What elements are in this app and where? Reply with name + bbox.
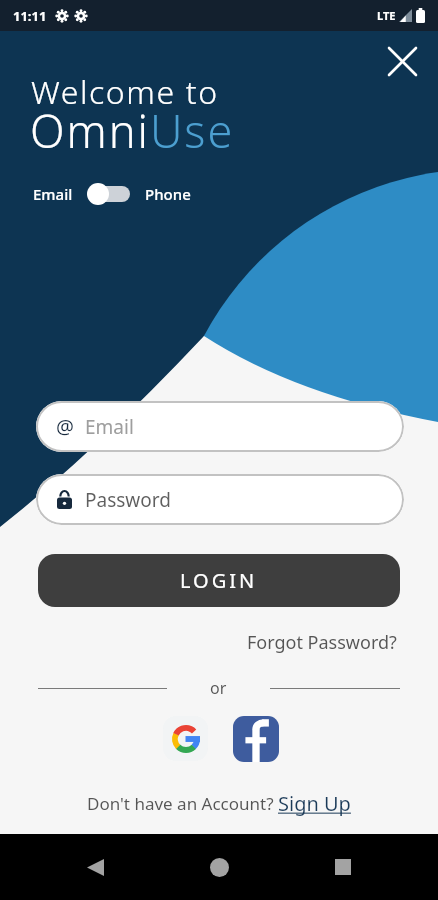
staticText: Sign Up [278, 790, 351, 817]
button[interactable] [163, 716, 208, 761]
button[interactable]: Forgot Password? [247, 630, 397, 655]
button[interactable]: Password [36, 474, 404, 525]
staticText: Forgot Password? [247, 630, 397, 655]
staticText: @ [56, 413, 74, 440]
button[interactable]: Email [33, 183, 191, 205]
button[interactable]: Sign Up [278, 790, 351, 817]
button[interactable]: LOGIN [38, 554, 400, 607]
staticText: LTE [377, 8, 396, 23]
staticText: Email [85, 414, 134, 440]
staticText: 11:11 [13, 7, 47, 25]
staticText: Password [85, 487, 171, 513]
staticText: Don't have an Account? [87, 792, 278, 815]
button[interactable] [191, 839, 247, 895]
staticText: Email [33, 184, 73, 204]
button[interactable] [233, 716, 279, 762]
staticText: OmniUse [30, 100, 235, 161]
button[interactable]: @ [36, 401, 404, 452]
button[interactable] [382, 41, 422, 81]
staticText: Welcome to [31, 70, 219, 114]
staticText: Phone [145, 184, 191, 204]
button[interactable] [67, 839, 123, 895]
button[interactable] [315, 839, 371, 895]
staticText: or [210, 677, 227, 699]
staticText: LOGIN [180, 567, 258, 594]
